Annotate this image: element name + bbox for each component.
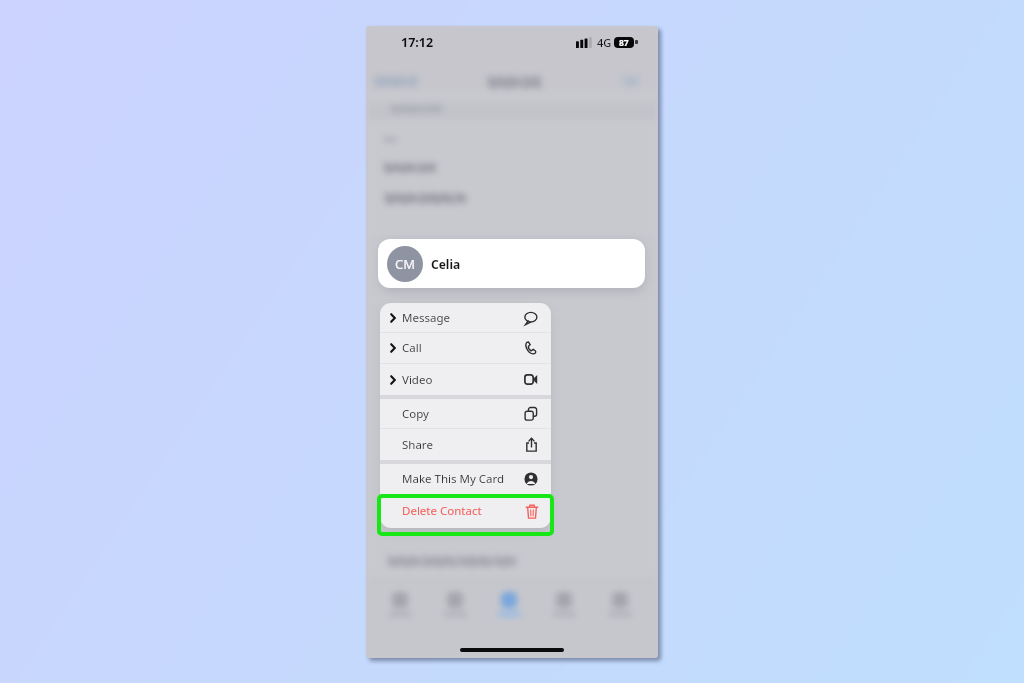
button[interactable]: Make This My Card (380, 464, 551, 494)
button[interactable]: Delete Contact (380, 494, 551, 528)
staticText: CM (395, 255, 416, 273)
other: Message (524, 311, 538, 325)
button[interactable]: Video (380, 364, 551, 395)
staticText: Call (402, 340, 422, 356)
staticText: Copy (402, 406, 429, 422)
other: Copy (524, 407, 538, 421)
other: Share (525, 437, 538, 452)
staticText: Delete Contact (402, 503, 482, 519)
other: Video (524, 374, 538, 385)
button[interactable]: CM (378, 239, 645, 288)
button[interactable]: Copy (380, 399, 551, 428)
button[interactable]: Call (380, 333, 551, 363)
staticText: 17:12 (401, 34, 434, 51)
button[interactable]: Message (380, 303, 551, 332)
other: Call (524, 341, 538, 355)
staticText: Make This My Card (402, 471, 505, 487)
staticText: Share (402, 437, 433, 453)
button[interactable]: Share (380, 429, 551, 460)
staticText: Video (402, 372, 433, 388)
staticText: 4G (597, 35, 612, 50)
other: Delete contact (526, 504, 538, 519)
staticText: Message (402, 310, 450, 326)
staticText: 87 (619, 37, 629, 48)
other: Make this my card (524, 472, 538, 486)
staticText: Celia (431, 256, 461, 272)
